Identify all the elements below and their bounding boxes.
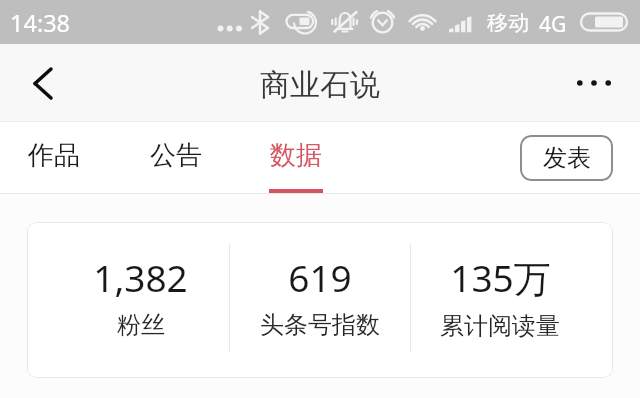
staticText: 累计阅读量: [440, 311, 560, 341]
button[interactable]: 数据: [269, 122, 323, 194]
staticText: 头条号指数: [260, 310, 380, 340]
staticText: 发表: [543, 143, 591, 173]
staticText: 粉丝: [117, 310, 165, 340]
button[interactable]: 公告: [149, 122, 203, 194]
button[interactable]: 1,382: [50, 222, 230, 378]
staticText: 14:38: [10, 7, 71, 39]
staticText: 商业石说: [260, 66, 380, 104]
staticText: 619: [288, 252, 352, 302]
staticText: 数据: [270, 139, 322, 172]
button[interactable]: 135万: [410, 222, 590, 378]
button[interactable]: Back: [12, 44, 74, 122]
staticText: 公告: [150, 139, 202, 172]
staticText: 135万: [450, 252, 551, 303]
staticText: 移动: [487, 10, 529, 36]
staticText: 作品: [28, 139, 80, 172]
staticText: 1,382: [93, 252, 188, 302]
button[interactable]: 作品: [27, 122, 81, 194]
staticText: 4G: [539, 10, 567, 39]
button[interactable]: 发表: [520, 135, 613, 181]
button[interactable]: More options: [563, 44, 625, 122]
button[interactable]: 619: [230, 222, 410, 378]
